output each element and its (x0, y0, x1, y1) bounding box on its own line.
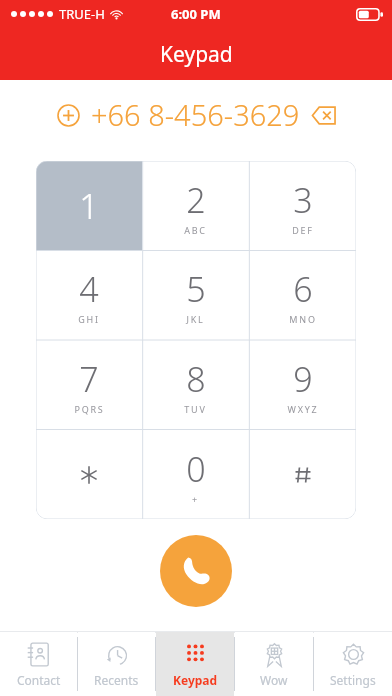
button[interactable]: 8 (142, 339, 249, 429)
staticText: 8 (186, 356, 206, 402)
button[interactable]: Add contact (51, 98, 85, 132)
staticText: JKL (186, 313, 205, 325)
button[interactable]: 0 (142, 429, 249, 519)
button[interactable]: 6 (249, 250, 356, 339)
button[interactable]: 2 (142, 161, 249, 250)
button[interactable]: 7 (36, 339, 142, 429)
staticText: 6:00 PM (171, 5, 221, 23)
staticText: 2 (186, 177, 206, 223)
button[interactable]: 3 (249, 161, 356, 250)
staticText: 9 (293, 356, 313, 402)
button[interactable]: Settings (314, 632, 392, 696)
staticText: Wow (260, 672, 288, 688)
button[interactable]: 1 (36, 161, 142, 250)
staticText: 1 (79, 183, 99, 229)
staticText: Recents (94, 672, 139, 688)
staticText: Keypad (173, 672, 218, 688)
staticText: TUV (184, 403, 207, 415)
staticText: 3 (293, 177, 313, 223)
staticText: DEF (292, 224, 314, 236)
staticText: 7 (79, 356, 99, 402)
button[interactable]: Wow (235, 632, 313, 696)
button[interactable]: Backspace (307, 98, 341, 132)
staticText: Contact (17, 672, 61, 688)
staticText: PQRS (74, 403, 105, 415)
button[interactable]: 9 (249, 339, 356, 429)
staticText: MNO (289, 313, 317, 325)
staticText: +66 8-456-3629 (91, 95, 300, 134)
staticText: GHI (78, 313, 100, 325)
staticText: Keypad (160, 40, 233, 69)
staticText: + (192, 493, 199, 505)
button[interactable]: 5 (142, 250, 249, 339)
button[interactable] (249, 429, 356, 519)
staticText: Settings (330, 672, 376, 688)
staticText: ABC (184, 224, 207, 236)
staticText: 4 (79, 266, 99, 312)
staticText: 6 (293, 266, 313, 312)
staticText: 0 (186, 446, 206, 492)
staticText: 5 (186, 266, 206, 312)
button[interactable] (36, 429, 142, 519)
button[interactable]: Recents (78, 632, 155, 696)
button[interactable]: Keypad (156, 632, 234, 696)
staticText: TRUE-H (59, 5, 105, 23)
button[interactable]: Call (160, 535, 232, 607)
button[interactable]: 4 (36, 250, 142, 339)
button[interactable]: Contact (0, 632, 77, 696)
staticText: WXYZ (287, 403, 319, 415)
